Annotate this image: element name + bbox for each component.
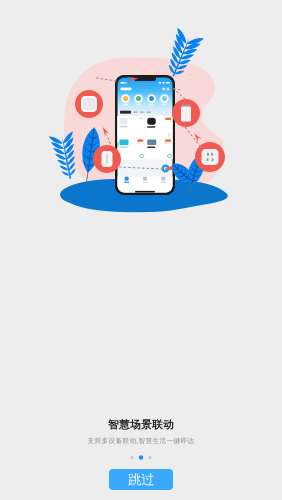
staticText: 支持多设备联动,智慧生活一键即达 (87, 436, 194, 445)
staticText: 智慧场景联动 (108, 418, 174, 431)
staticText: 跳过 (128, 471, 154, 488)
button[interactable]: 跳过 (109, 469, 173, 490)
